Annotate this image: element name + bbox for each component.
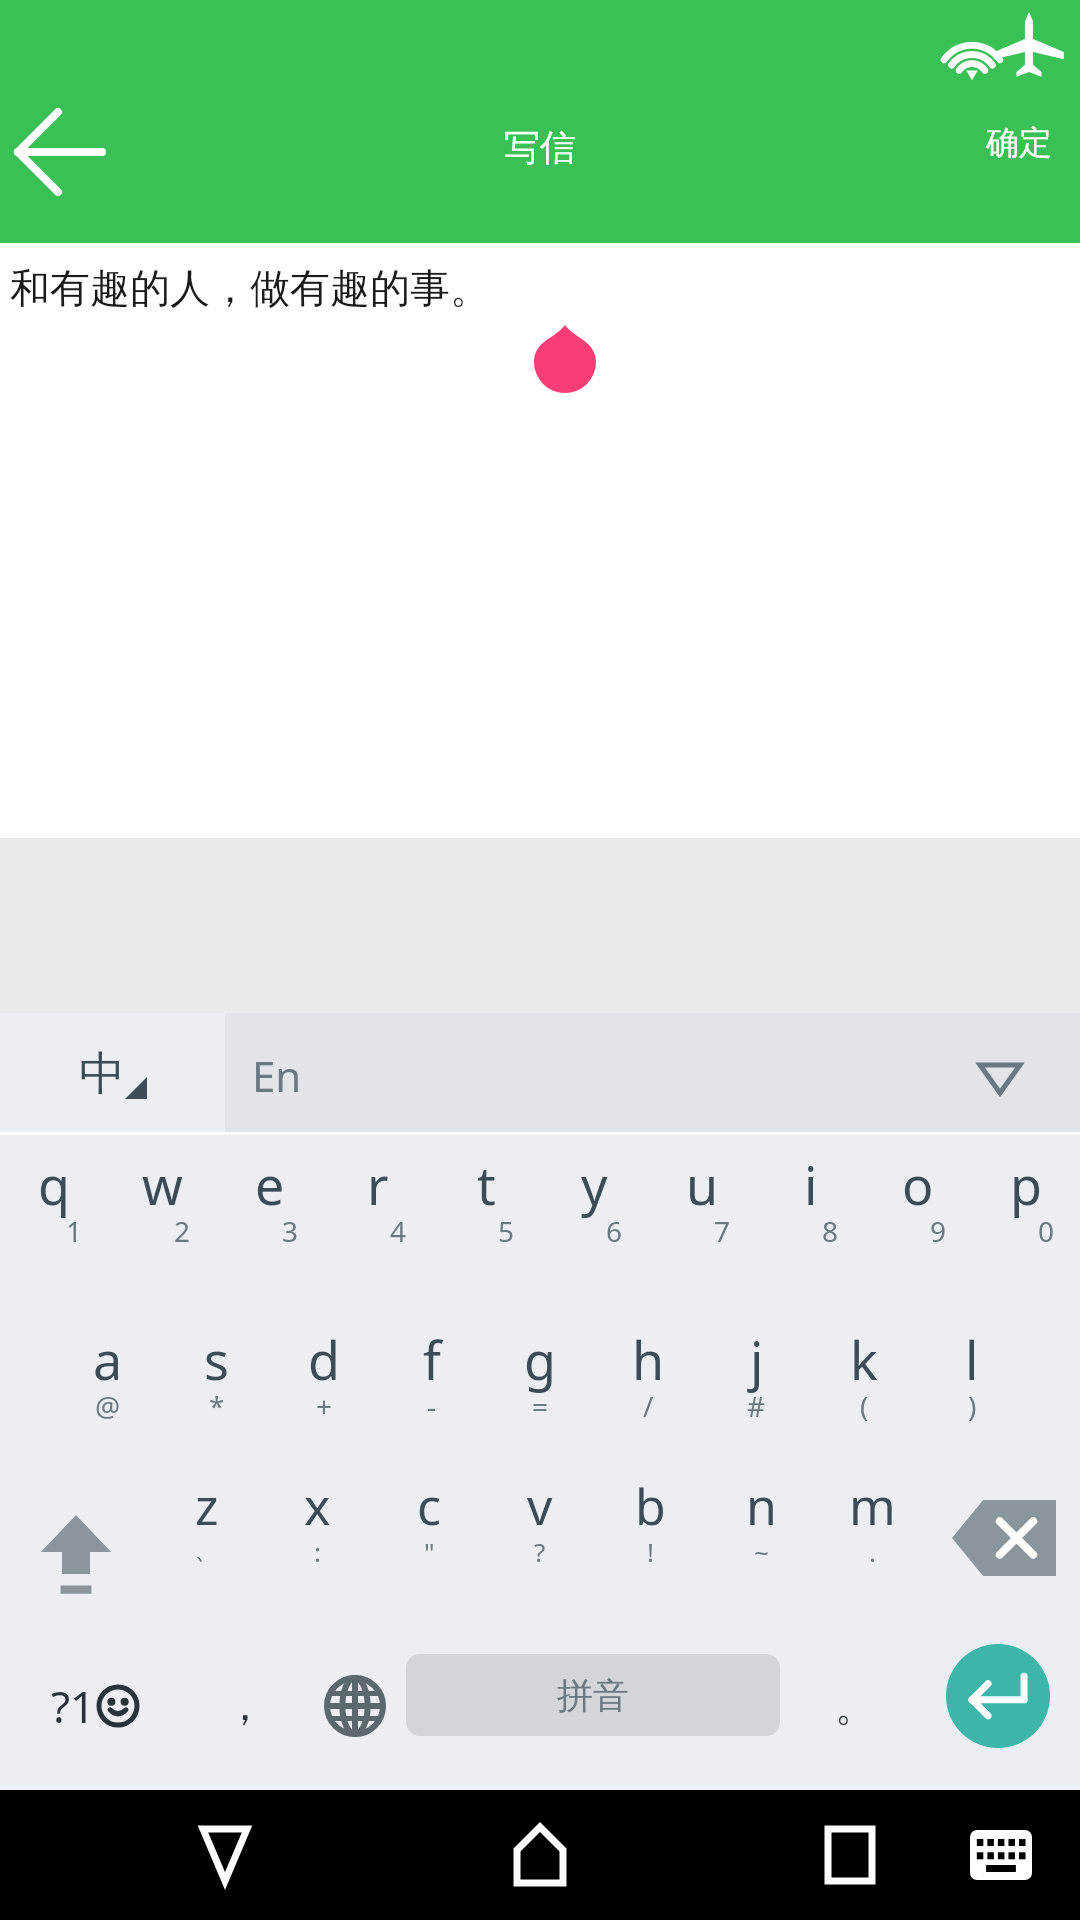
button[interactable]: c (373, 1472, 484, 1640)
button[interactable]: Back (0, 92, 120, 212)
button[interactable]: g (486, 1310, 594, 1472)
staticText: 拼音 (557, 1673, 629, 1718)
button[interactable]: d (270, 1310, 378, 1472)
button[interactable]: Hide keyboard (175, 1805, 275, 1905)
button[interactable]: e (216, 1135, 324, 1310)
staticText: 4 (390, 1212, 407, 1250)
staticText: 1 (66, 1212, 83, 1250)
button[interactable]: t (432, 1135, 540, 1310)
staticText: r (367, 1149, 389, 1220)
staticText: g (524, 1324, 556, 1395)
button[interactable]: b (595, 1472, 706, 1640)
staticText: m (849, 1472, 896, 1540)
button[interactable]: w (108, 1135, 216, 1310)
staticText: u (686, 1149, 719, 1220)
button[interactable]: m (817, 1472, 928, 1640)
button[interactable] (225, 1013, 1080, 1135)
staticText: ~ (754, 1534, 769, 1569)
button[interactable]: p (972, 1135, 1080, 1310)
staticText: s (204, 1324, 229, 1395)
staticText: : (314, 1534, 321, 1569)
button[interactable]: o (864, 1135, 972, 1310)
staticText: c (417, 1472, 441, 1540)
staticText: q (38, 1149, 70, 1220)
staticText: i (804, 1149, 818, 1220)
staticText: # (747, 1387, 766, 1425)
button[interactable]: y (540, 1135, 648, 1310)
staticText: p (1010, 1149, 1042, 1220)
staticText: x (304, 1472, 331, 1540)
button[interactable]: f (378, 1310, 486, 1472)
staticText: @ (95, 1387, 121, 1425)
button[interactable]: a (54, 1310, 162, 1472)
staticText: b (635, 1472, 666, 1540)
button[interactable]: Home (490, 1805, 590, 1905)
staticText: 9 (930, 1212, 947, 1250)
staticText: l (965, 1324, 979, 1395)
button[interactable]: l (918, 1310, 1026, 1472)
staticText: 确定 (986, 122, 1052, 164)
button[interactable]: ， (190, 1658, 300, 1754)
button[interactable]: 中 (0, 1013, 225, 1135)
button[interactable]: j (702, 1310, 810, 1472)
button[interactable]: k (810, 1310, 918, 1472)
button[interactable]: h (594, 1310, 702, 1472)
button[interactable]: Symbols and emoji (10, 1658, 180, 1754)
button[interactable]: q (0, 1135, 108, 1310)
button[interactable]: v (484, 1472, 595, 1640)
staticText: 2 (174, 1212, 191, 1250)
staticText: e (255, 1149, 285, 1220)
staticText: ! (647, 1534, 654, 1569)
staticText: En (252, 1047, 302, 1104)
button[interactable]: z (152, 1472, 262, 1640)
staticText: . (869, 1534, 876, 1569)
button[interactable]: n (706, 1472, 817, 1640)
button[interactable]: s (162, 1310, 270, 1472)
staticText: 8 (822, 1212, 839, 1250)
staticText: n (746, 1472, 777, 1540)
button[interactable]: x (262, 1472, 373, 1640)
button[interactable]: Recent apps (800, 1805, 900, 1905)
staticText: h (632, 1324, 665, 1395)
button[interactable]: Switch keyboard (958, 1812, 1044, 1898)
staticText: t (477, 1149, 496, 1220)
staticText: " (424, 1534, 435, 1569)
staticText: 7 (714, 1212, 731, 1250)
button[interactable]: Backspace (928, 1472, 1080, 1640)
staticText: a (93, 1324, 123, 1395)
staticText: 3 (282, 1212, 299, 1250)
button[interactable]: u (648, 1135, 756, 1310)
staticText: 。 (835, 1681, 875, 1731)
staticText: ?1 (51, 1676, 96, 1736)
button[interactable]: Shift (0, 1472, 152, 1640)
staticText: w (142, 1149, 183, 1220)
staticText: 0 (1038, 1212, 1055, 1250)
button[interactable]: 。 (800, 1658, 910, 1754)
staticText: 写信 (504, 125, 576, 170)
staticText: 5 (498, 1212, 515, 1250)
staticText: ( (860, 1387, 869, 1425)
staticText: j (750, 1324, 764, 1395)
staticText: f (423, 1324, 441, 1395)
button[interactable]: r (324, 1135, 432, 1310)
staticText: ? (534, 1534, 546, 1569)
button[interactable]: 确定 (958, 108, 1080, 178)
staticText: v (527, 1472, 553, 1540)
staticText: 、 (194, 1534, 220, 1567)
staticText: o (902, 1149, 934, 1220)
button[interactable]: Collapse keyboard (978, 1063, 1022, 1095)
staticText: = (532, 1387, 549, 1425)
staticText: y (581, 1149, 608, 1220)
staticText: + (316, 1387, 333, 1425)
button[interactable]: Change keyboard language (300, 1658, 410, 1754)
staticText: ， (224, 1680, 266, 1733)
staticText: * (209, 1387, 225, 1425)
button[interactable]: Enter (946, 1644, 1050, 1748)
staticText: z (195, 1472, 219, 1540)
staticText: ) (968, 1387, 977, 1425)
staticText: 和有趣的人，做有趣的事。 (10, 263, 490, 313)
button[interactable]: i (756, 1135, 864, 1310)
staticText: - (427, 1387, 437, 1425)
button[interactable]: 拼音 (406, 1654, 780, 1736)
staticText: k (850, 1324, 878, 1395)
